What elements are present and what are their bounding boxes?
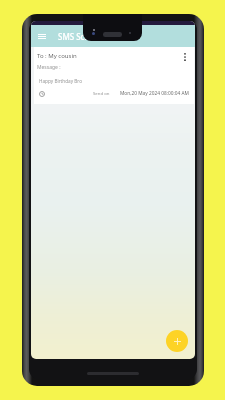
staticText: SMS Sched (58, 31, 100, 42)
staticText: Happy Birthday Bro (39, 78, 83, 84)
staticText: Send on (93, 90, 110, 96)
staticText: To : My cousin (37, 52, 77, 60)
staticText: Mon,20 May 2024 08:00:04 AM (120, 90, 189, 97)
button[interactable]: To : My cousin (34, 47, 194, 104)
staticText: Message : (37, 64, 61, 71)
button[interactable]: Add (166, 330, 188, 352)
button[interactable]: More options (180, 51, 190, 63)
button[interactable]: Menu (34, 26, 49, 47)
